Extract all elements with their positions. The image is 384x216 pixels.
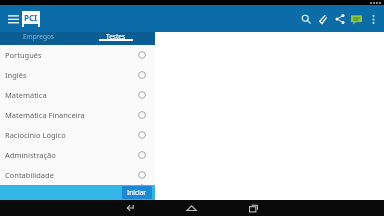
- button[interactable]: Messages: [348, 9, 365, 29]
- button[interactable]: Open navigation drawer: [4, 10, 22, 28]
- staticText: Inglês: [5, 70, 138, 80]
- button[interactable]: Administração: [0, 145, 155, 165]
- staticText: Empregos: [23, 32, 54, 41]
- staticText: Testes: [106, 32, 126, 41]
- staticText: PCI: [24, 12, 38, 23]
- button[interactable]: Matemática: [0, 85, 155, 105]
- button[interactable]: Testes: [77, 32, 155, 41]
- staticText: Contabilidade: [5, 170, 138, 180]
- staticText: Iniciar: [127, 188, 147, 197]
- button[interactable]: Back: [118, 200, 144, 216]
- staticText: Raciocínio Lógico: [5, 130, 138, 140]
- button[interactable]: Raciocínio Lógico: [0, 125, 155, 145]
- staticText: Administração: [5, 150, 138, 160]
- staticText: Matemática Financeira: [5, 110, 138, 120]
- button[interactable]: Home: [178, 200, 204, 216]
- staticText: Português: [5, 50, 138, 60]
- button[interactable]: Empregos: [0, 32, 77, 41]
- button[interactable]: Inglês: [0, 65, 155, 85]
- button[interactable]: Recent apps: [240, 200, 266, 216]
- button[interactable]: Iniciar: [122, 186, 152, 199]
- button[interactable]: PCI Concursos home: [22, 11, 40, 27]
- button[interactable]: Português: [0, 45, 155, 65]
- staticText: Matemática: [5, 90, 138, 100]
- button[interactable]: Share: [331, 9, 348, 29]
- button[interactable]: Search: [297, 9, 314, 29]
- button[interactable]: Contabilidade: [0, 165, 155, 185]
- button[interactable]: Attach: [314, 9, 331, 29]
- button[interactable]: Matemática Financeira: [0, 105, 155, 125]
- button[interactable]: More options: [365, 9, 382, 29]
